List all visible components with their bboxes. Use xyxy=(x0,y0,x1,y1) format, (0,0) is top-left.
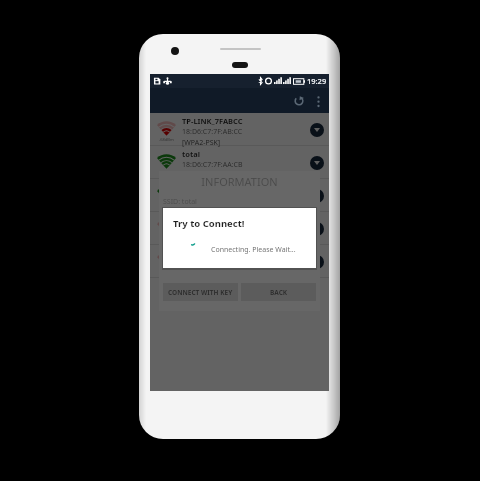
staticText: [WPA2-PSK] xyxy=(182,204,221,214)
button[interactable]: BACK xyxy=(241,283,316,301)
button[interactable]: More options xyxy=(309,92,327,110)
staticText: Connecting. Please Wait... xyxy=(211,245,296,255)
staticText: TP-LINK_7FABCC xyxy=(182,116,243,126)
staticText: Frequency: 2437 MHz xyxy=(163,227,234,237)
button[interactable]: -46dBm xyxy=(150,146,329,179)
staticText: total xyxy=(182,149,200,159)
staticText: Try to Connect! xyxy=(173,217,245,230)
staticText: CONNECT WITH KEY xyxy=(168,288,233,297)
staticText: 18:D6:C7:7F:AB:CC xyxy=(182,127,243,137)
staticText: Level: -46 dBm xyxy=(163,237,211,247)
staticText: total-guest xyxy=(182,182,224,192)
button[interactable]: Show details xyxy=(310,156,324,170)
button[interactable]: -68dBm xyxy=(150,113,329,146)
button[interactable]: Show details xyxy=(310,222,324,236)
button[interactable]: -48dBm xyxy=(150,179,329,212)
staticText: [WPA2-PSK] xyxy=(182,138,221,148)
button[interactable]: Refresh xyxy=(289,91,309,111)
staticText: 18:D6:C7:7F:AA:CB xyxy=(182,160,243,170)
staticText: [WPA2-PSK] xyxy=(182,171,221,181)
staticText: -72dBm xyxy=(159,236,174,241)
staticText: [WPA2-PSK] xyxy=(182,237,221,247)
staticText: 18:D6:C7:7F:AA:CC xyxy=(182,193,243,203)
button[interactable]: CONNECT WITH KEY xyxy=(163,283,238,301)
staticText: BSSID: 18:D6:C7:7F:AA:CB xyxy=(163,207,247,217)
staticText: 34:6B:D3:11:09:7A xyxy=(182,226,242,236)
staticText: dlink-2.4G xyxy=(182,248,220,258)
button[interactable]: Show details xyxy=(310,189,324,203)
staticText: BACK xyxy=(270,288,288,297)
staticText: HUAWEI-A83F xyxy=(182,215,233,225)
staticText: -68dBm xyxy=(159,137,174,142)
staticText: -80dBm xyxy=(159,269,174,274)
button[interactable]: Show details xyxy=(310,255,324,269)
staticText: Capabilities: [WPA2-PSK] xyxy=(163,217,243,227)
button[interactable]: -80dBm xyxy=(150,245,329,278)
staticText: INFORMATION xyxy=(201,174,278,189)
button[interactable]: Show details xyxy=(310,123,324,137)
staticText: -48dBm xyxy=(159,203,174,208)
staticText: SSID: total xyxy=(163,197,197,207)
staticText: 19:29 xyxy=(307,76,327,86)
staticText: C4:A8:1D:66:31:02 xyxy=(182,259,242,269)
button[interactable]: -72dBm xyxy=(150,212,329,245)
